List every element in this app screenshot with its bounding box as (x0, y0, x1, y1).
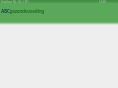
staticText: ABCgezondevoeding (1, 8, 44, 15)
other: Page content (0, 22, 118, 88)
button[interactable]: ABCgezondevoeding (0, 3, 118, 22)
staticText: 14:08 (99, 0, 106, 3)
staticText: Vodafone NL 4G LTE1 (1, 0, 29, 3)
